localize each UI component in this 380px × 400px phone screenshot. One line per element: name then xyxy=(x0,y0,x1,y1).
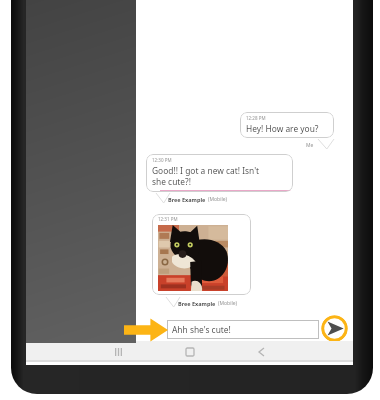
staticText: Hey! How are you? xyxy=(246,123,319,134)
staticText: Bree Example xyxy=(168,196,206,203)
button[interactable]: Recent apps xyxy=(100,341,136,362)
staticText: Ahh she's cute! xyxy=(172,324,231,335)
button[interactable]: Ahh she's cute! xyxy=(167,320,319,339)
staticText: Good!! I got a new cat! Isn't she cute?! xyxy=(152,165,274,187)
button[interactable]: Send xyxy=(321,315,348,342)
staticText: Bree Example xyxy=(178,300,216,307)
button[interactable]: 12:30 PM xyxy=(146,154,293,192)
staticText: Me xyxy=(306,142,314,149)
staticText: 12:28 PM xyxy=(246,115,266,121)
staticText: 12:30 PM xyxy=(152,157,172,163)
button[interactable]: Back xyxy=(243,341,279,362)
button[interactable]: 12:31 PM xyxy=(152,214,251,295)
staticText: 12:31 PM xyxy=(158,216,178,222)
button[interactable]: 12:28 PM xyxy=(240,112,334,138)
button[interactable]: Home xyxy=(172,341,208,362)
staticText: (Mobile) xyxy=(208,196,228,203)
staticText: (Mobile) xyxy=(218,300,238,307)
